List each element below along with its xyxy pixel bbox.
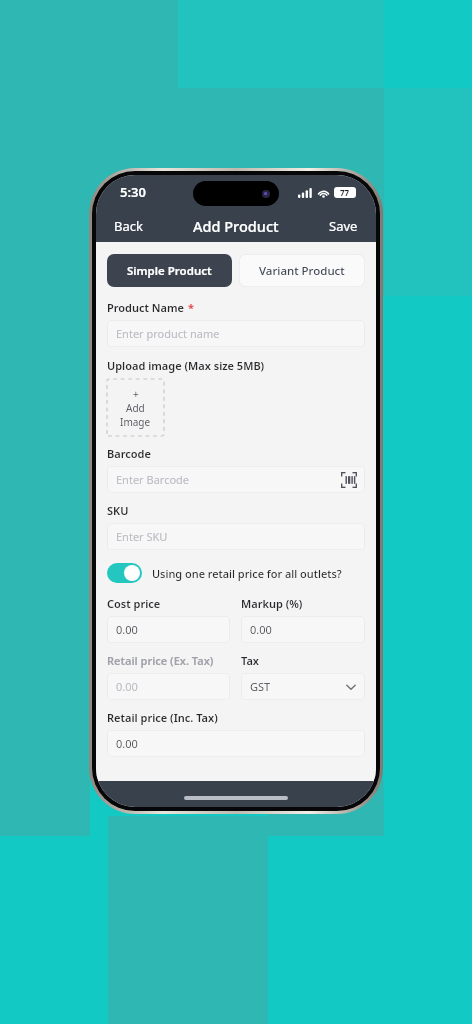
button[interactable]: Enter product name xyxy=(107,320,365,347)
staticText: Product Name xyxy=(107,300,185,315)
button[interactable]: Simple Product xyxy=(107,254,232,287)
staticText: Back xyxy=(114,217,143,235)
staticText: SKU xyxy=(107,503,129,518)
staticText: * xyxy=(188,300,194,315)
button[interactable]: GST xyxy=(241,673,365,700)
staticText: 0.00 xyxy=(116,736,138,751)
staticText: 5:30 xyxy=(120,183,146,201)
staticText: Variant Product xyxy=(259,263,345,279)
button[interactable]: Enter SKU xyxy=(107,523,365,550)
staticText: Image xyxy=(120,415,151,429)
button[interactable]: 0.00 xyxy=(107,730,365,757)
button[interactable]: Using one retail price for all outlets? xyxy=(107,563,342,583)
staticText: Tax xyxy=(241,653,259,668)
staticText: Enter product name xyxy=(116,326,220,341)
staticText: Enter SKU xyxy=(116,529,168,544)
staticText: 0.00 xyxy=(116,679,138,694)
staticText: Add Product xyxy=(193,216,279,236)
button[interactable]: Variant Product xyxy=(239,254,365,287)
button[interactable]: Back xyxy=(96,211,161,241)
staticText: Barcode xyxy=(107,446,151,461)
button[interactable]: Enter Barcode xyxy=(107,466,365,493)
staticText: Retail price (Ex. Tax) xyxy=(107,653,214,668)
staticText: Enter Barcode xyxy=(116,472,190,487)
other: Expand tax options xyxy=(346,682,356,692)
staticText: Using one retail price for all outlets? xyxy=(152,566,342,581)
staticText: Markup (%) xyxy=(241,596,303,611)
staticText: Cost price xyxy=(107,596,161,611)
staticText: 0.00 xyxy=(116,622,138,637)
staticText: Simple Product xyxy=(127,263,212,279)
staticText: GST xyxy=(250,679,271,694)
staticText: Save xyxy=(329,217,358,235)
button[interactable]: Save xyxy=(311,211,376,241)
staticText: 77 xyxy=(340,187,350,198)
button[interactable]: 0.00 xyxy=(107,616,230,643)
staticText: Add xyxy=(126,401,145,415)
button[interactable]: 0.00 xyxy=(241,616,365,643)
button[interactable]: Scan barcode xyxy=(341,472,357,488)
button[interactable]: 0.00 xyxy=(107,673,230,700)
button[interactable]: + xyxy=(107,379,164,436)
staticText: Upload image (Max size 5MB) xyxy=(107,358,265,373)
staticText: Retail price (Inc. Tax) xyxy=(107,710,218,725)
staticText: 0.00 xyxy=(250,622,272,637)
staticText: + xyxy=(133,387,139,401)
